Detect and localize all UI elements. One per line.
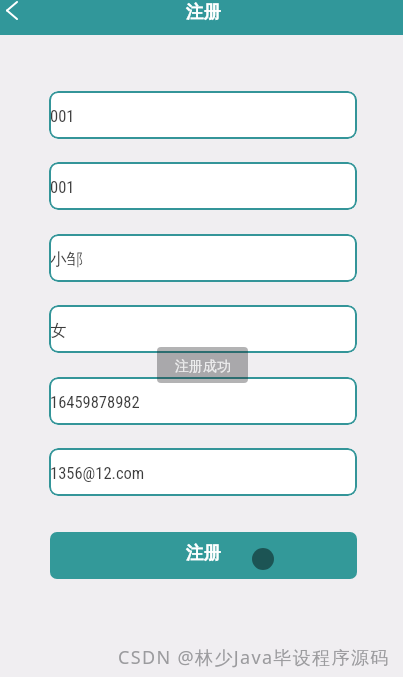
staticText: 001 (50, 107, 75, 126)
staticText: 1356@12.com (50, 464, 145, 483)
staticText: 001 (50, 178, 75, 197)
button[interactable]: 001 (49, 162, 357, 210)
button[interactable]: 注册 (50, 532, 357, 579)
staticText: 16459878982 (50, 393, 140, 412)
button[interactable]: 小邹 (49, 234, 357, 282)
staticText: 注册成功 (175, 358, 231, 376)
staticText: 小邹 (50, 249, 83, 270)
button[interactable]: 1356@12.com (49, 448, 357, 496)
staticText: 女 (50, 320, 67, 341)
button[interactable]: Back (0, 0, 26, 22)
staticText: 注册 (186, 1, 221, 23)
button[interactable]: 001 (49, 91, 357, 139)
staticText: CSDN @林少Java毕设程序源码 (118, 645, 390, 670)
staticText: 注册 (186, 542, 221, 564)
button[interactable]: 16459878982 (49, 377, 357, 425)
button[interactable]: 女 (49, 305, 357, 353)
